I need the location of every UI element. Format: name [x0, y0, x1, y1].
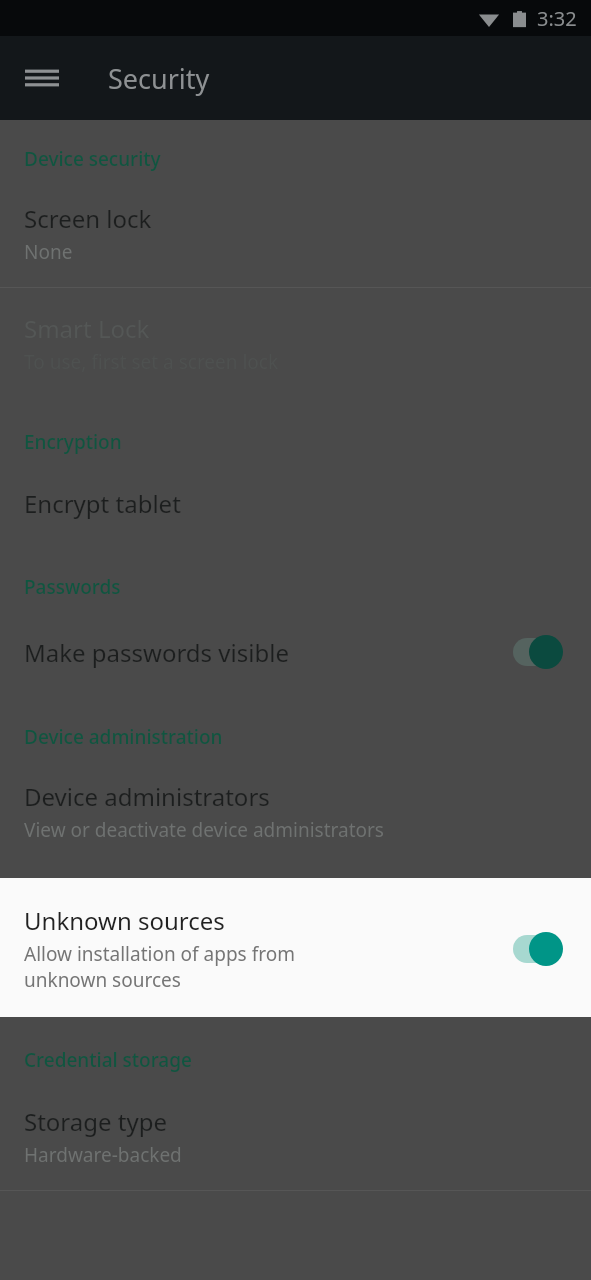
staticText: Device administrators	[24, 780, 270, 813]
button[interactable]: Toggle setting	[511, 929, 571, 969]
button[interactable]: Encrypt tablet	[0, 461, 591, 546]
staticText: Storage type	[24, 1105, 167, 1138]
button[interactable]: Device administrators	[0, 756, 591, 863]
staticText: None	[24, 239, 73, 265]
staticText: Encrypt tablet	[24, 487, 181, 520]
button[interactable]: Unknown sources	[0, 878, 591, 1017]
staticText: Passwords	[24, 574, 121, 600]
button[interactable]: Make passwords visible	[0, 606, 591, 698]
staticText: View or deactivate device administrators	[24, 817, 384, 843]
staticText: Unknown sources	[24, 904, 225, 937]
staticText: Security	[108, 60, 210, 97]
staticText: Make passwords visible	[24, 636, 289, 669]
button[interactable]: Screen lock	[0, 178, 591, 287]
staticText: Device security	[24, 146, 161, 172]
staticText: Allow installation of apps from unknown …	[24, 941, 357, 993]
button[interactable]: Storage type	[0, 1079, 591, 1190]
staticText: Smart Lock	[24, 312, 150, 345]
staticText: 3:32	[537, 5, 577, 32]
staticText: Device administration	[24, 724, 223, 750]
staticText: Credential storage	[24, 1047, 192, 1073]
staticText: Encryption	[24, 429, 122, 455]
button[interactable]: Toggle setting	[511, 632, 571, 672]
button[interactable]: Open navigation menu	[14, 50, 70, 106]
staticText: Hardware-backed	[24, 1142, 182, 1168]
staticText: Screen lock	[24, 202, 152, 235]
